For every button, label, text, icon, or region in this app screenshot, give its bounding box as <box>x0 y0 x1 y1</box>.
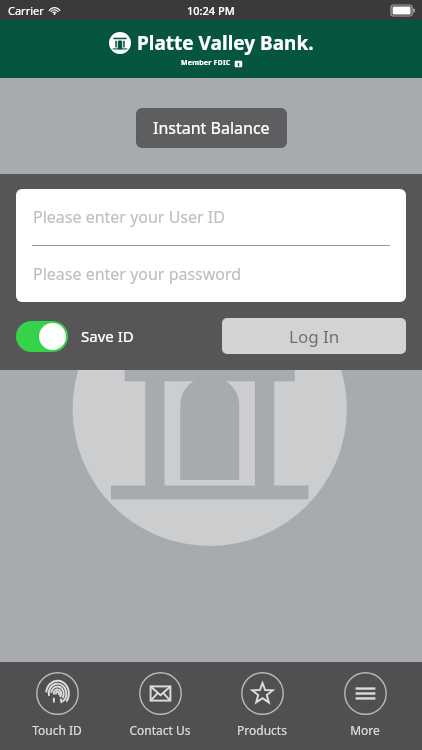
staticText: Platte Valley Bank. <box>137 30 314 56</box>
button[interactable]: More <box>320 662 410 738</box>
staticText: Carrier <box>8 3 44 18</box>
staticText: 10:24 PM <box>187 3 235 18</box>
staticText: Touch ID <box>32 722 82 738</box>
staticText: More <box>350 722 380 738</box>
staticText: Log In <box>289 325 340 348</box>
staticText: Contact Us <box>129 722 191 738</box>
button[interactable]: Touch ID <box>12 662 102 738</box>
button[interactable]: Contact Us <box>115 662 205 738</box>
button[interactable]: Instant Balance <box>136 108 287 148</box>
button[interactable]: Log In <box>222 318 406 354</box>
button[interactable]: Please enter your password <box>16 246 406 302</box>
staticText: Please enter your User ID <box>33 206 225 228</box>
staticText: Products <box>237 722 287 738</box>
staticText: Save ID <box>81 326 134 346</box>
staticText: Instant Balance <box>153 117 270 139</box>
staticText: Please enter your password <box>33 263 242 285</box>
staticText: Member FDIC <box>181 58 231 68</box>
button[interactable]: Save ID toggle <box>16 321 68 352</box>
button[interactable]: Please enter your User ID <box>16 189 406 245</box>
button[interactable]: Products <box>217 662 307 738</box>
